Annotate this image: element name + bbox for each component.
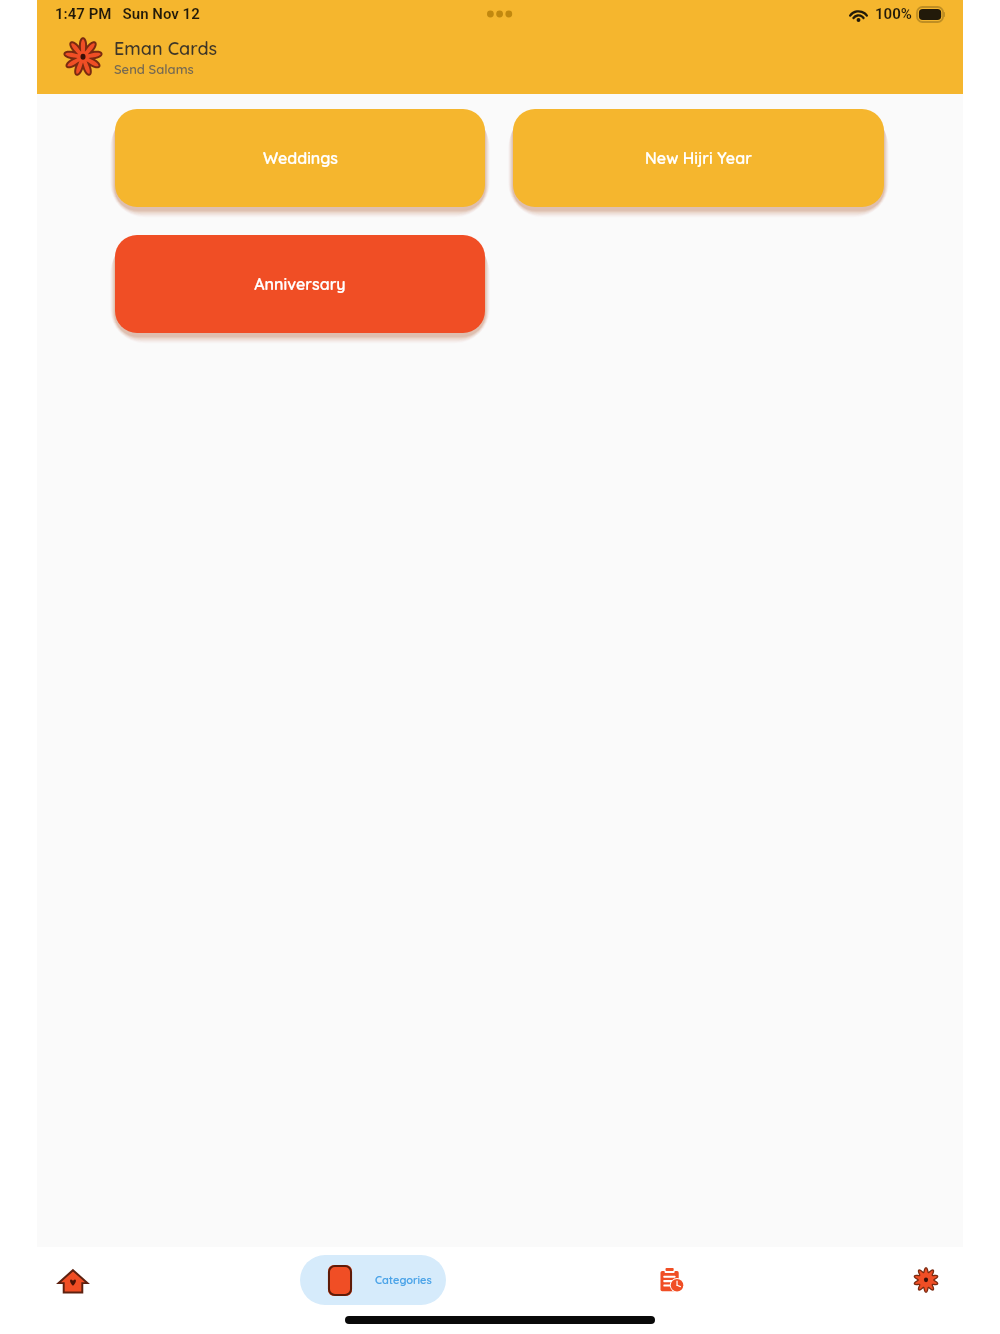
staticText: Anniversary [254,274,346,294]
button[interactable]: Pending [619,1252,725,1308]
button[interactable]: Settings [873,1252,979,1308]
staticText: New Hijri Year [645,148,752,168]
staticText: Eman Cards [114,37,218,60]
staticText: 100% [875,5,912,23]
staticText: Weddings [263,148,338,168]
button[interactable]: Categories [300,1255,446,1305]
staticText: Send Salams [114,61,194,77]
button[interactable]: New Hijri Year [513,109,884,207]
button[interactable]: Anniversary [115,235,485,333]
staticText: 1:47 PM Sun Nov 12 [55,5,200,23]
button[interactable]: Weddings [115,109,485,207]
staticText: Categories [375,1273,432,1287]
button[interactable]: Home [20,1253,126,1309]
